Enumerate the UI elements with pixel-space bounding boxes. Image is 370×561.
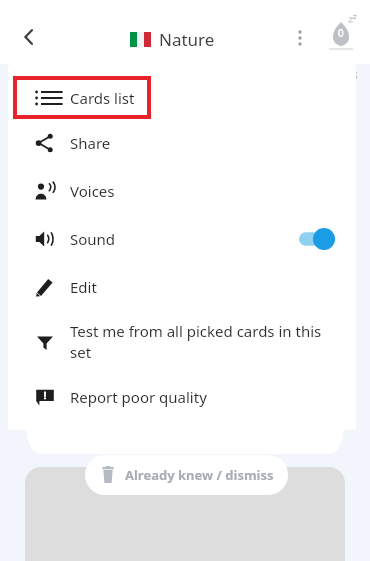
staticText: Report poor quality <box>70 387 207 407</box>
button[interactable]: Share <box>8 119 356 167</box>
button[interactable]: Report poor quality <box>8 373 356 421</box>
staticText: Test me from all picked cards in this se… <box>70 321 340 363</box>
staticText: Already knew / dismiss <box>125 466 274 484</box>
button[interactable]: Voices <box>8 167 356 215</box>
button[interactable]: More options <box>284 22 316 54</box>
button[interactable]: Sleeping cards <box>322 14 360 52</box>
staticText: 0 <box>338 26 344 40</box>
button[interactable]: Back <box>12 20 46 54</box>
staticText: Share <box>70 133 111 153</box>
staticText: Sound <box>70 229 116 249</box>
staticText: Cards list <box>70 88 135 108</box>
button[interactable]: Sound toggle <box>299 228 335 250</box>
staticText: Nature <box>159 28 215 51</box>
staticText: s <box>352 66 358 82</box>
button[interactable]: Cards list <box>13 76 151 119</box>
button[interactable]: Edit <box>8 263 356 311</box>
button[interactable]: Test me from all picked cards in this se… <box>8 311 356 373</box>
button[interactable]: Already knew / dismiss <box>85 455 288 495</box>
staticText: Voices <box>70 181 115 201</box>
button[interactable]: Sound <box>8 215 356 263</box>
staticText: Edit <box>70 277 97 297</box>
